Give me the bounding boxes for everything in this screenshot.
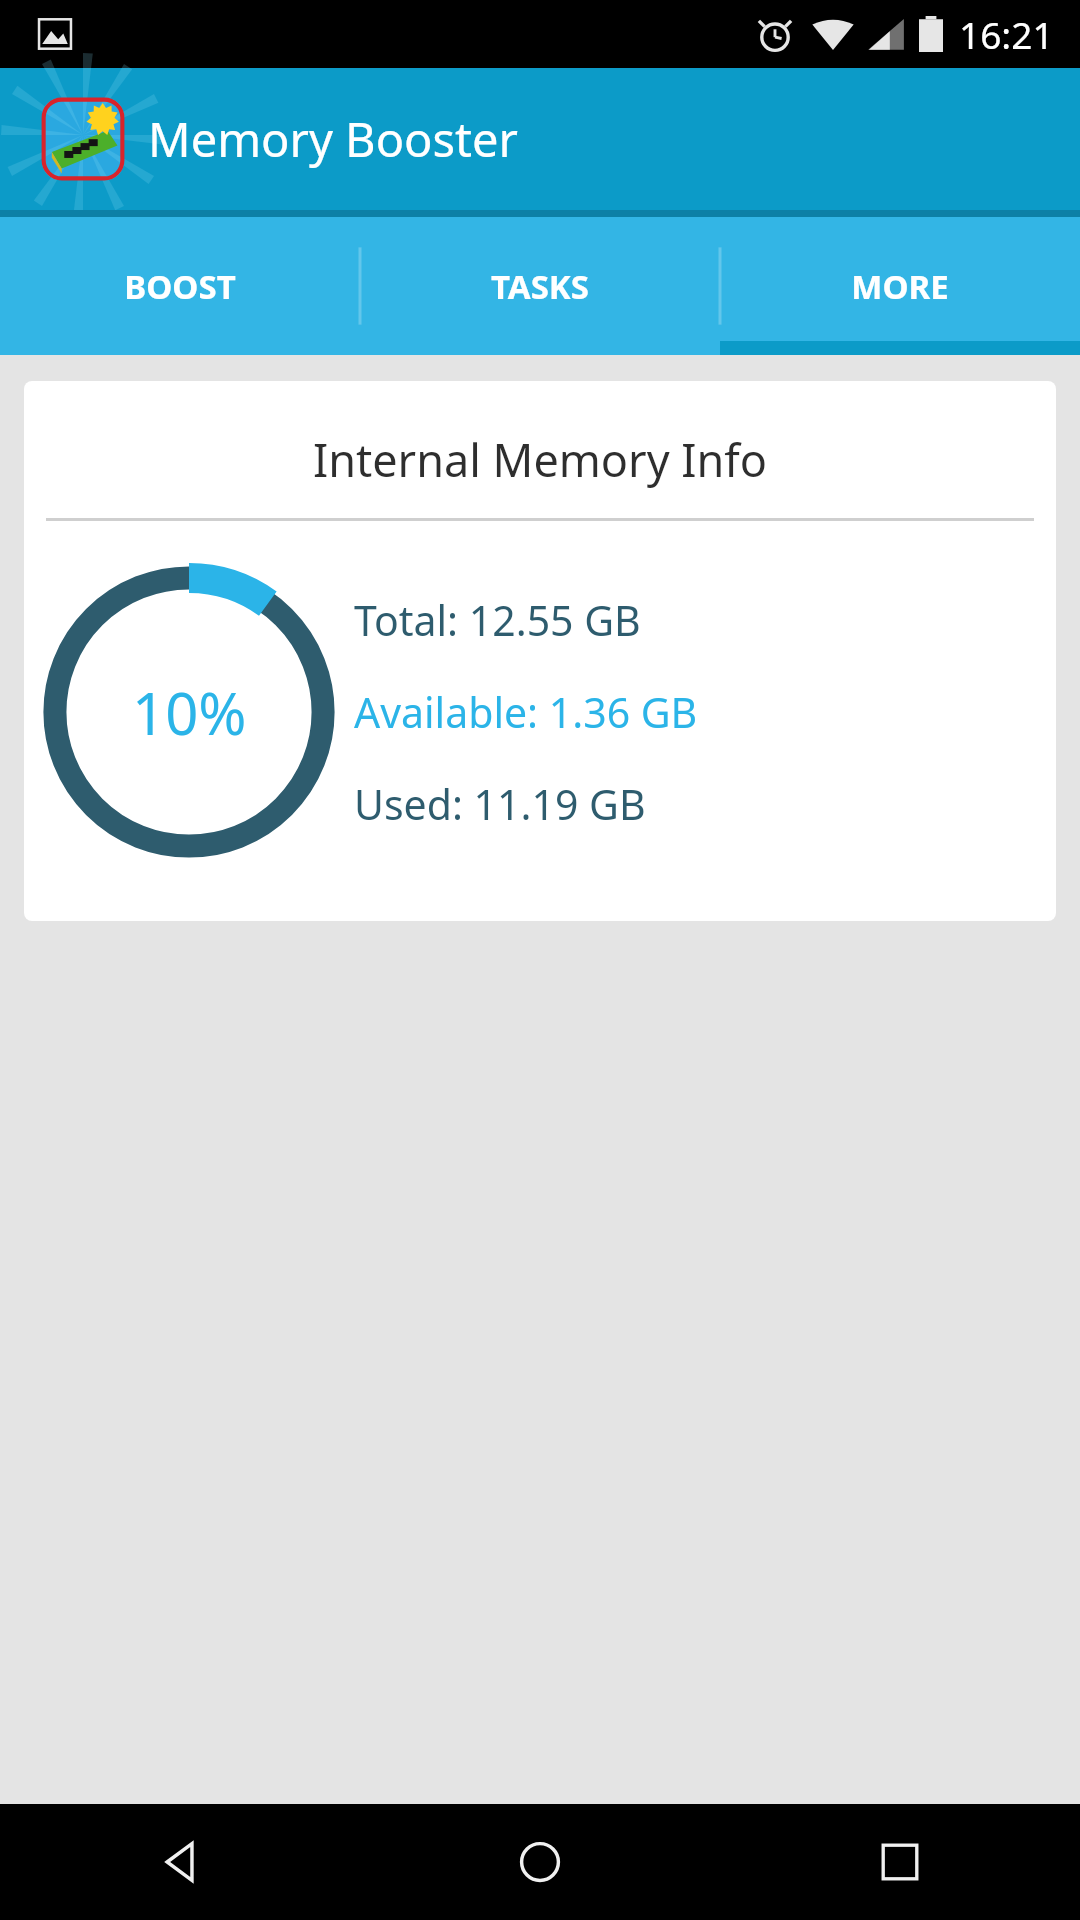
staticText: Used: 11.19 GB	[354, 776, 646, 832]
staticText: MORE	[851, 264, 949, 309]
button[interactable]: Recents	[720, 1804, 1080, 1920]
staticText: BOOST	[124, 264, 236, 309]
button[interactable]: MORE	[720, 217, 1080, 355]
staticText: Internal Memory Info	[24, 429, 1056, 490]
staticText: 16:21	[959, 9, 1054, 59]
button[interactable]: TASKS	[360, 217, 720, 355]
staticText: Memory Booster	[148, 107, 518, 171]
staticText: Total: 12.55 GB	[354, 592, 641, 648]
staticText: TASKS	[491, 264, 589, 309]
button[interactable]: Home	[360, 1804, 720, 1920]
button[interactable]: BOOST	[0, 217, 360, 355]
staticText: 10%	[132, 673, 247, 752]
button[interactable]: Back	[0, 1804, 360, 1920]
staticText: Available: 1.36 GB	[354, 684, 698, 740]
button[interactable]: Internal Memory Info	[24, 381, 1056, 921]
